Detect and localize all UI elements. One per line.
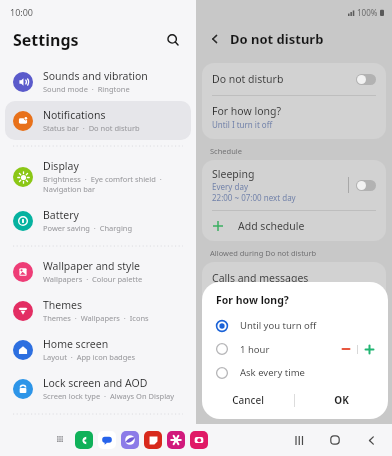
staticText: For how long? — [212, 104, 282, 118]
button[interactable]: Back — [206, 30, 224, 48]
button[interactable]: Ask every time — [202, 361, 388, 384]
button[interactable]: Sleeping — [202, 160, 386, 210]
staticText: Cancel — [232, 393, 264, 407]
staticText: Themes — [43, 298, 83, 312]
button[interactable]: App — [167, 431, 185, 449]
button[interactable]: Notifications — [5, 101, 191, 140]
staticText: OK — [334, 393, 349, 407]
staticText: 1 hour — [240, 343, 339, 356]
button[interactable]: Add schedule — [202, 211, 386, 241]
button[interactable]: Battery — [5, 201, 191, 240]
staticText: Add schedule — [238, 219, 305, 233]
staticText: Home screen — [43, 337, 109, 351]
staticText: Lock screen and AOD — [43, 376, 148, 390]
staticText: Notifications — [43, 108, 106, 122]
button[interactable]: App — [144, 431, 162, 449]
button[interactable]: Lock screen and AOD — [5, 369, 191, 408]
button[interactable]: Toggle — [356, 180, 376, 191]
staticText: For how long? — [216, 293, 289, 307]
staticText: Sound mode · Ringtone — [43, 84, 130, 94]
button[interactable]: Calls and messages — [202, 262, 386, 294]
staticText: Battery — [43, 208, 79, 222]
staticText: Display — [43, 159, 79, 173]
staticText: Until I turn it off — [212, 119, 273, 130]
button[interactable]: OK — [295, 387, 388, 413]
staticText: Wallpapers · Colour palette — [43, 274, 143, 284]
button[interactable]: Sounds and vibration — [5, 62, 191, 101]
staticText: Do not disturb — [230, 30, 324, 48]
staticText: Power saving · Charging — [43, 223, 133, 233]
button[interactable]: Apps — [52, 431, 70, 449]
button[interactable]: App — [121, 431, 139, 449]
button[interactable]: Decrease — [339, 342, 353, 356]
staticText: Screen lock type · Always On Display — [43, 391, 175, 401]
staticText: Calls and messages — [212, 271, 309, 285]
button[interactable]: For how long? — [202, 96, 386, 139]
staticText: Layout · App icon badges — [43, 352, 136, 362]
button[interactable]: Cancel — [202, 387, 294, 413]
button[interactable]: Toggle — [356, 74, 376, 85]
staticText: Do not disturb — [212, 72, 356, 86]
staticText: Every day — [212, 181, 248, 192]
staticText: Themes · Wallpapers · Icons — [43, 313, 149, 323]
button[interactable]: Themes — [5, 291, 191, 330]
button[interactable]: Until you turn off — [202, 314, 388, 337]
button[interactable]: Display — [5, 152, 191, 201]
staticText: Sounds and vibration — [43, 69, 148, 83]
button[interactable]: 1 hour — [202, 337, 388, 361]
button[interactable]: App — [190, 431, 208, 449]
staticText: Wallpaper and style — [43, 259, 141, 273]
staticText: Sleeping — [212, 167, 255, 181]
button[interactable]: Recents — [290, 431, 308, 449]
staticText: 100% — [357, 7, 378, 18]
button[interactable]: App — [98, 431, 116, 449]
staticText: Status bar · Do not disturb — [43, 123, 140, 133]
button[interactable]: Wallpaper and style — [5, 252, 191, 291]
button[interactable]: Home screen — [5, 330, 191, 369]
staticText: Brightness · Eye comfort shield · Naviga… — [43, 174, 162, 194]
button[interactable]: Increase — [362, 342, 376, 356]
button[interactable]: Do not disturb — [202, 63, 386, 95]
button[interactable]: App — [75, 431, 93, 449]
staticText: Until you turn off — [240, 319, 376, 332]
staticText: Allowed during Do not disturb — [210, 248, 317, 258]
staticText: 22:00 ~ 07:00 next day — [212, 192, 296, 203]
button[interactable]: Home — [326, 431, 344, 449]
button[interactable]: Back — [362, 431, 380, 449]
staticText: Schedule — [210, 146, 242, 156]
button[interactable]: Search — [162, 29, 184, 51]
staticText: Settings — [13, 29, 79, 51]
staticText: Ask every time — [240, 366, 376, 379]
staticText: 10:00 — [10, 6, 34, 18]
